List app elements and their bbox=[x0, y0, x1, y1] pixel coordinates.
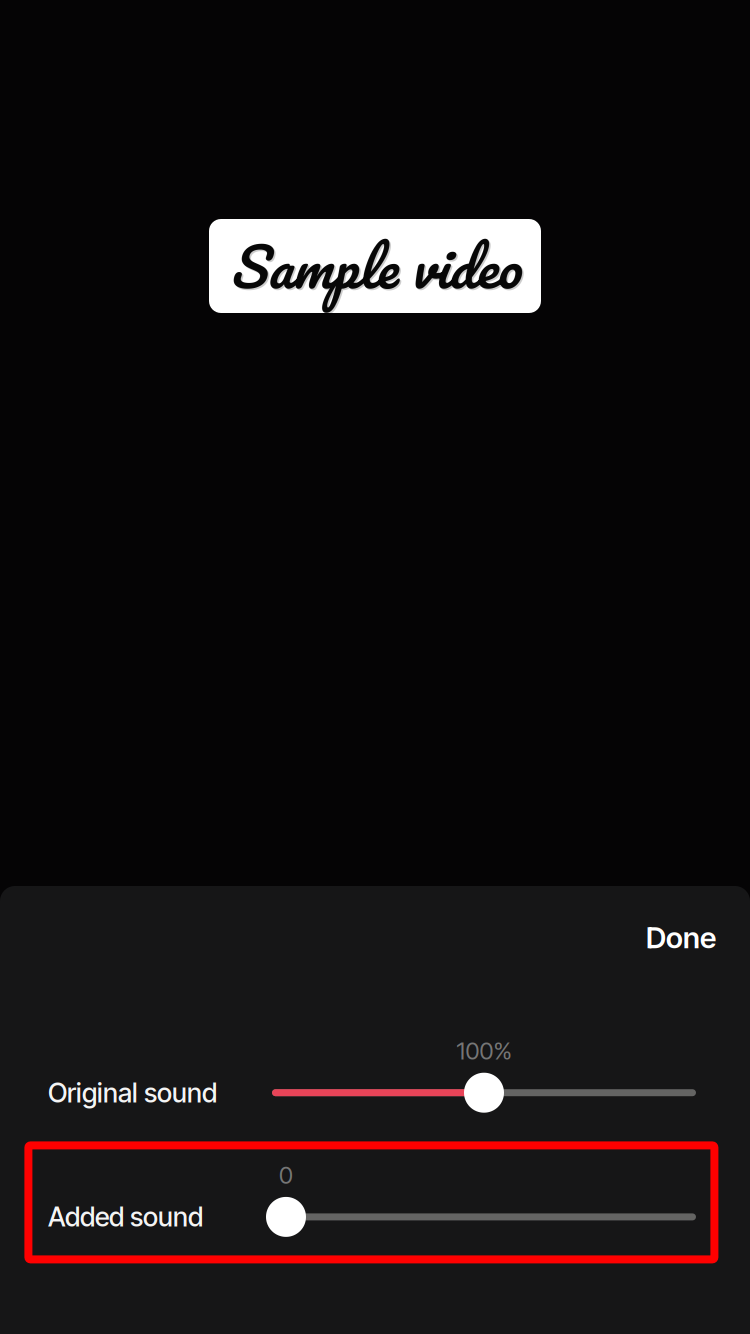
staticText: 100% bbox=[456, 1036, 511, 1065]
staticText: Sample video bbox=[231, 221, 521, 314]
staticText: Added sound bbox=[48, 1201, 203, 1233]
staticText: 0 bbox=[279, 1160, 293, 1189]
button[interactable]: 0 bbox=[0, 1142, 750, 1266]
staticText: Sample video bbox=[230, 219, 520, 313]
staticText: Original sound bbox=[48, 1077, 217, 1109]
staticText: Done bbox=[646, 920, 716, 955]
button[interactable]: 100% bbox=[0, 1018, 750, 1142]
button[interactable]: Done bbox=[566, 905, 716, 969]
